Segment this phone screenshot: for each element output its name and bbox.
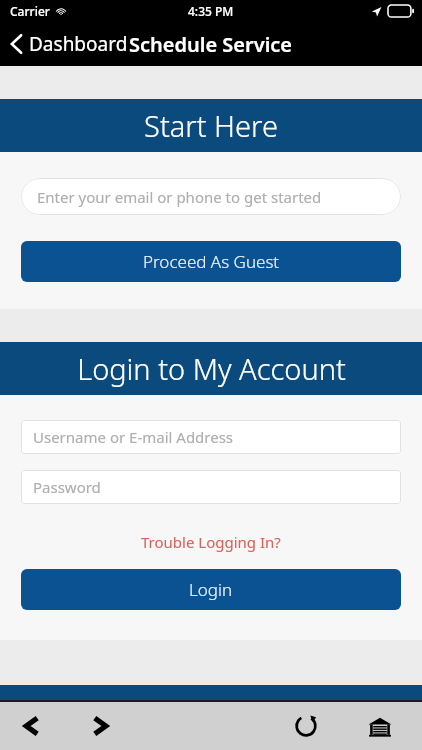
staticText: Username or E-mail Address (33, 427, 234, 447)
button[interactable]: Enter your email or phone to get started (21, 178, 401, 215)
button[interactable]: Reload (284, 704, 328, 748)
button[interactable]: Password (21, 470, 401, 504)
staticText: Start Here (144, 106, 278, 145)
staticText: 4:35 PM (188, 3, 234, 19)
button[interactable]: Trouble Logging In? (0, 532, 422, 552)
button[interactable]: Home (358, 704, 402, 748)
button[interactable]: Login (21, 569, 401, 610)
staticText: Trouble Logging In? (141, 532, 281, 552)
staticText: Enter your email or phone to get started (37, 187, 322, 207)
staticText: Login to My Account (77, 349, 346, 388)
button[interactable]: Dashboard (0, 25, 136, 63)
staticText: Password (33, 477, 101, 497)
button[interactable]: Forward (78, 704, 122, 748)
staticText: Schedule Service (129, 31, 293, 58)
staticText: Dashboard (29, 31, 128, 57)
button[interactable]: Back (10, 704, 54, 748)
staticText: Proceed As Guest (143, 250, 280, 273)
button[interactable]: Proceed As Guest (21, 241, 401, 282)
staticText: Carrier (10, 3, 50, 19)
staticText: Login (189, 578, 233, 601)
button[interactable]: Username or E-mail Address (21, 420, 401, 454)
